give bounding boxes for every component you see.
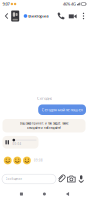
staticText: Виктория xyxy=(28,13,48,19)
staticText: 9:07 xyxy=(2,1,9,7)
button[interactable]: Record voice message xyxy=(77,175,85,183)
button[interactable]: Home xyxy=(43,192,46,195)
staticText: 00:04 xyxy=(12,142,21,146)
button[interactable]: Camera xyxy=(67,175,76,183)
button[interactable]: Voice call xyxy=(57,12,65,20)
staticText: ожидайте и наблюдайте! xyxy=(27,126,61,130)
staticText: Сегодня мой не пошел xyxy=(42,107,83,112)
staticText: 46% xyxy=(63,1,70,7)
staticText: Сегодня xyxy=(37,95,52,101)
button[interactable]: Сообщение xyxy=(2,174,56,184)
staticText: Ваш заказ принят, и такі заедет. Также xyxy=(20,122,68,125)
staticText: 09:08 xyxy=(34,159,43,162)
button[interactable]: Happy reaction xyxy=(12,157,21,164)
button[interactable]: More options xyxy=(77,12,86,20)
button[interactable]: Video call xyxy=(65,12,77,20)
staticText: Сообщение xyxy=(6,177,22,181)
button[interactable]: Attach file xyxy=(57,175,66,183)
button[interactable]: Recent apps xyxy=(20,192,23,195)
button[interactable]: Back xyxy=(66,192,69,196)
button[interactable]: Back xyxy=(2,13,11,19)
button[interactable]: Laughing reaction xyxy=(4,157,12,164)
staticText: 4G xyxy=(71,1,76,7)
button[interactable]: Profile photo xyxy=(11,10,19,21)
button[interactable]: Smiling reaction xyxy=(21,157,31,164)
button[interactable]: Play voice message xyxy=(2,136,38,149)
